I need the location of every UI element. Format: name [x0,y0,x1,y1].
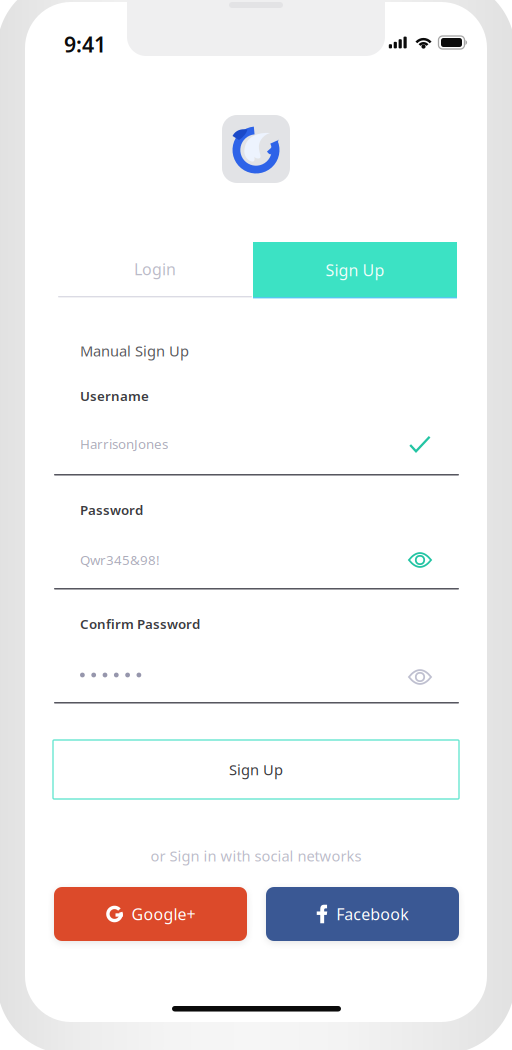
staticText: Confirm Password [80,615,200,633]
button[interactable]: Username available [408,432,432,456]
button[interactable]: Sign Up [253,242,457,298]
button[interactable]: Hide password [408,548,432,572]
staticText: Sign Up [325,259,384,281]
button[interactable]: Login [58,241,252,297]
staticText: or Sign in with social networks [150,846,361,865]
staticText: Username [80,387,149,405]
button[interactable]: Facebook [266,887,459,941]
staticText: Qwr345&98! [80,551,160,569]
button[interactable]: Sign Up [53,740,459,799]
staticText: Facebook [336,903,409,925]
button[interactable]: Google+ [54,887,247,941]
staticText: Login [134,258,176,280]
button[interactable]: Show confirm password [408,665,432,689]
staticText: 9:41 [64,30,106,58]
staticText: HarrisonJones [80,435,168,453]
staticText: Google+ [131,903,195,925]
staticText: Password [80,501,143,519]
staticText: Manual Sign Up [80,341,189,360]
staticText: Sign Up [229,760,283,779]
